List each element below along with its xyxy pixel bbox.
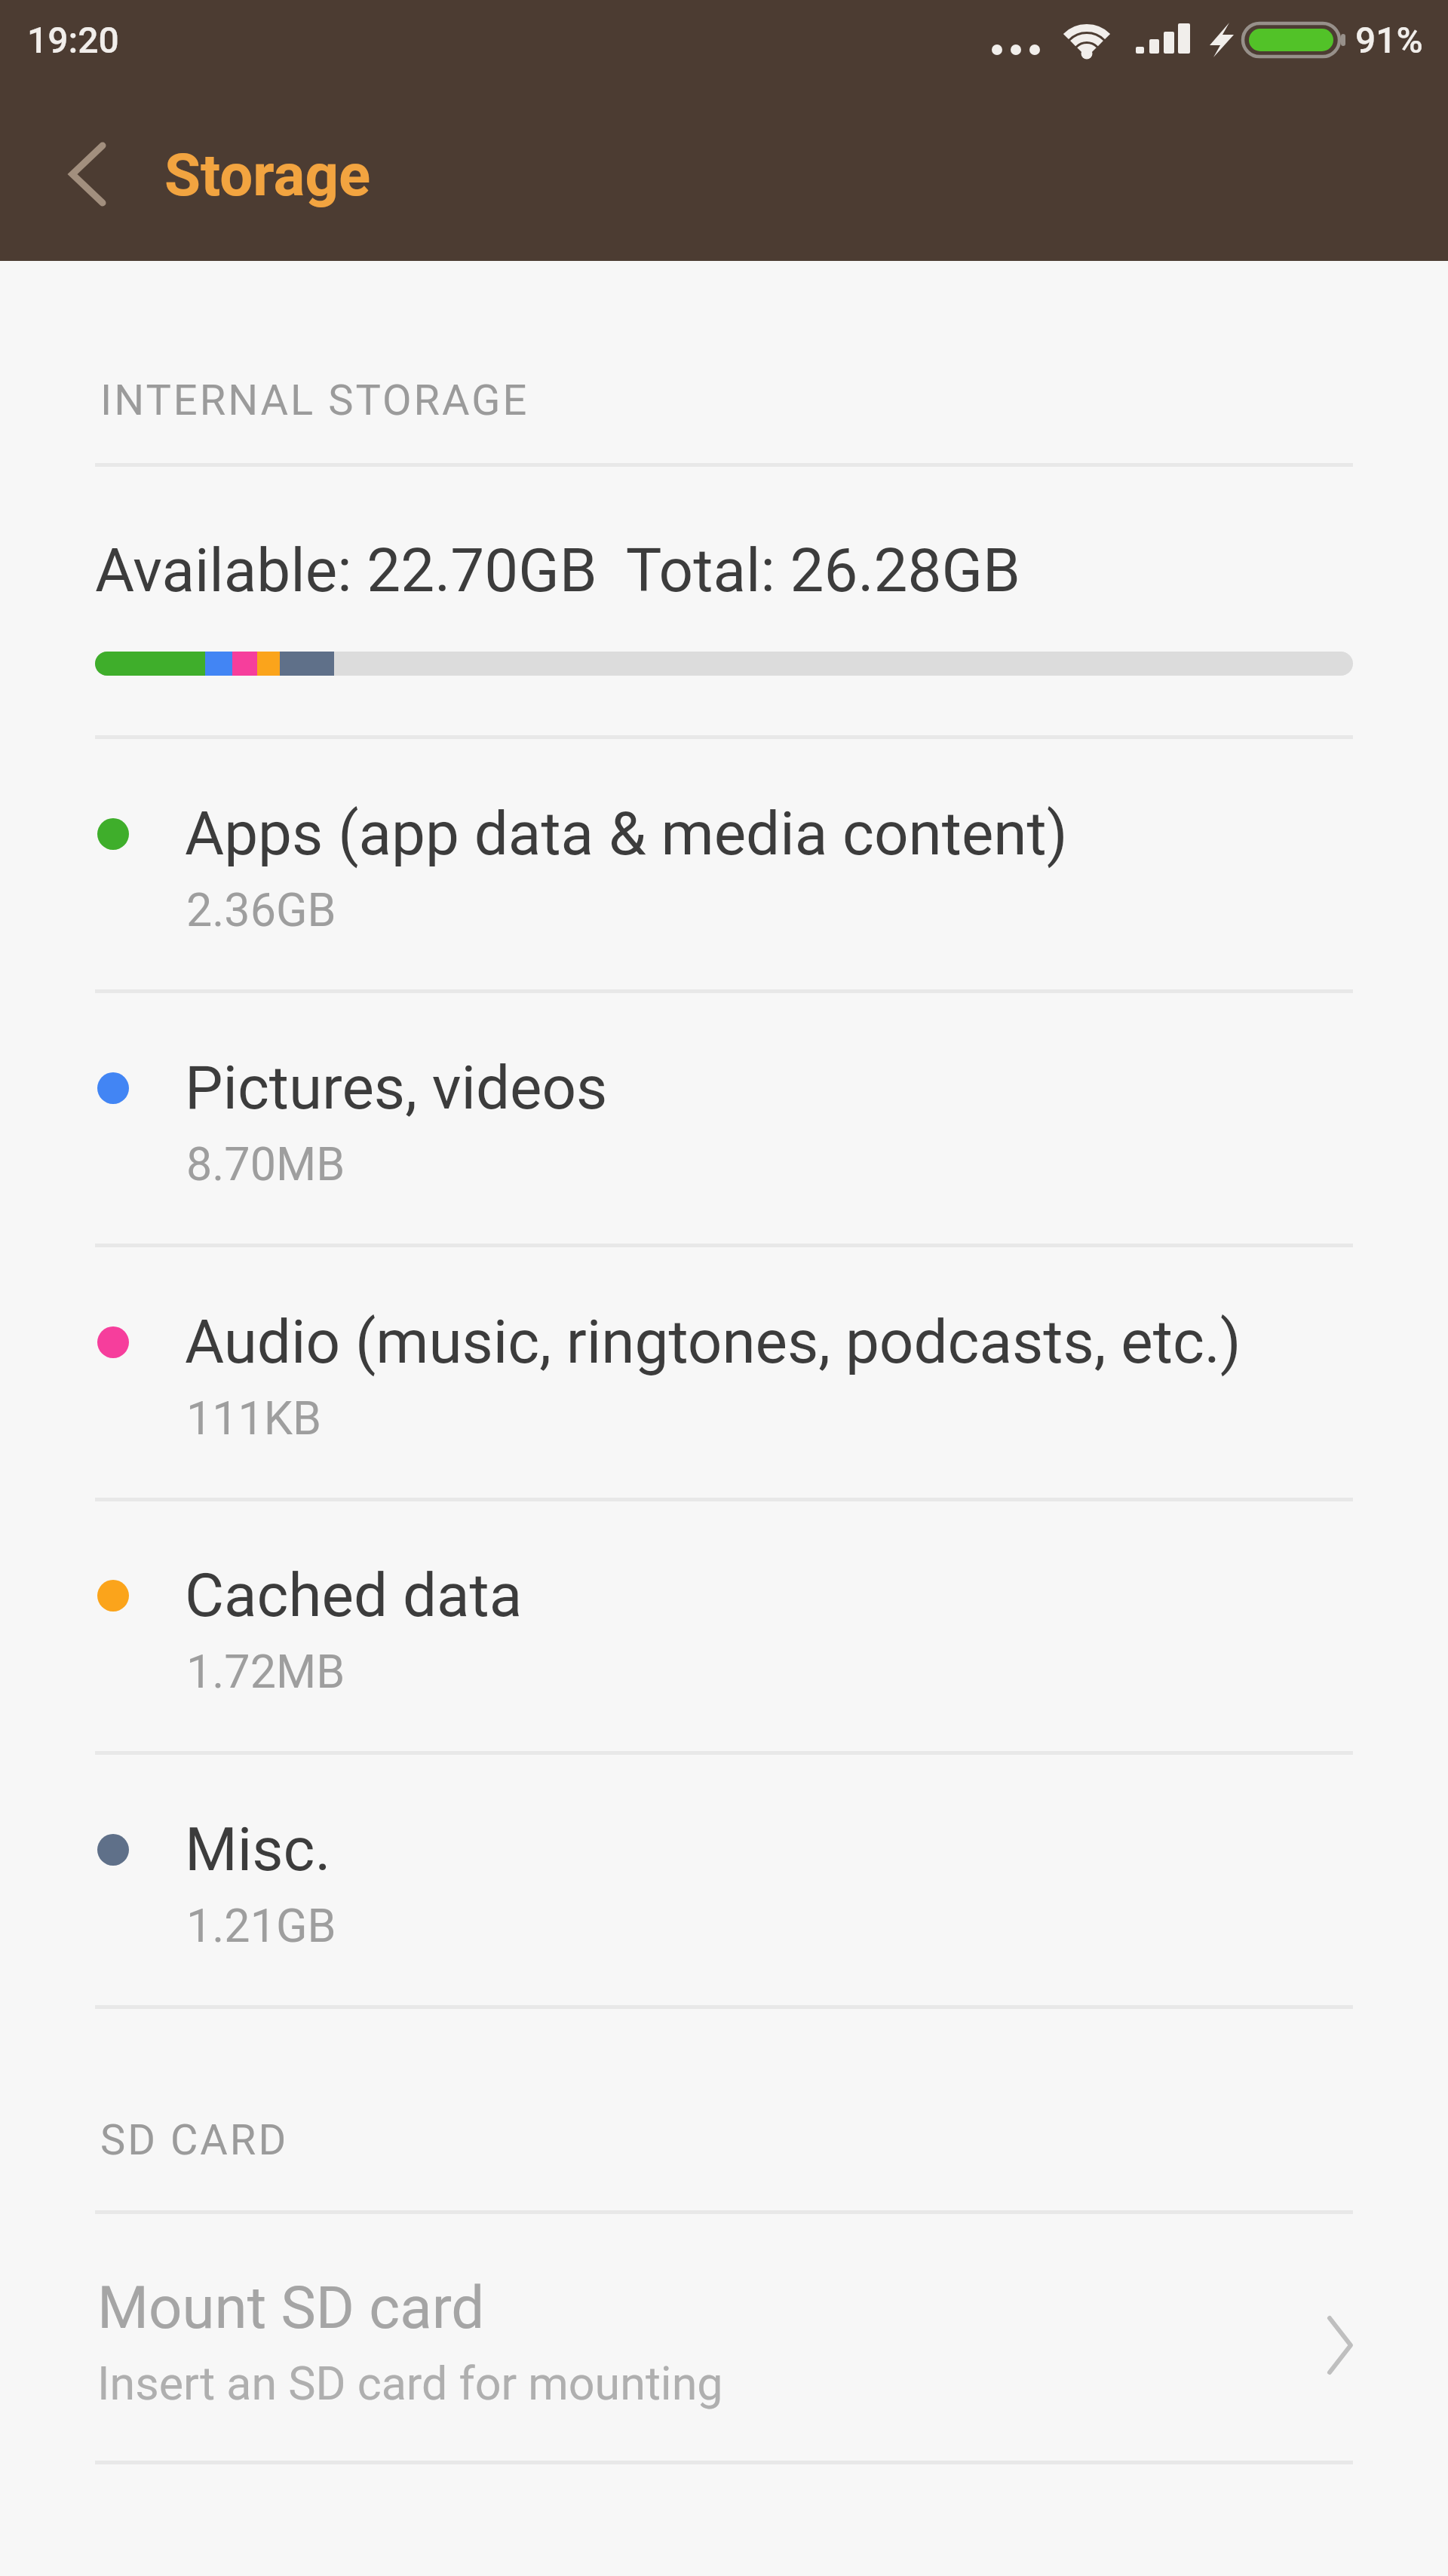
staticText: 2.36GB bbox=[186, 883, 336, 937]
staticText: Storage bbox=[164, 141, 371, 210]
staticText: Apps (app data & media content) bbox=[185, 799, 1068, 869]
staticText: Audio (music, ringtones, podcasts, etc.) bbox=[185, 1307, 1241, 1378]
staticText: 1.21GB bbox=[186, 1899, 336, 1952]
staticText: 19:20 bbox=[27, 19, 119, 61]
staticText: 91% bbox=[1355, 19, 1423, 61]
staticText: INTERNAL STORAGE bbox=[100, 376, 529, 425]
staticText: Cached data bbox=[185, 1560, 523, 1631]
staticText: 1.72MB bbox=[186, 1645, 345, 1698]
staticText: Mount SD card bbox=[97, 2274, 485, 2342]
staticText: Available: 22.70GB Total: 26.28GB bbox=[95, 535, 1020, 606]
staticText: 8.70MB bbox=[186, 1137, 345, 1191]
staticText: Misc. bbox=[185, 1814, 331, 1885]
staticText: Insert an SD card for mounting bbox=[97, 2357, 723, 2410]
staticText: 111KB bbox=[186, 1391, 322, 1445]
staticText: SD CARD bbox=[100, 2115, 289, 2165]
staticText: Pictures, videos bbox=[185, 1053, 608, 1124]
